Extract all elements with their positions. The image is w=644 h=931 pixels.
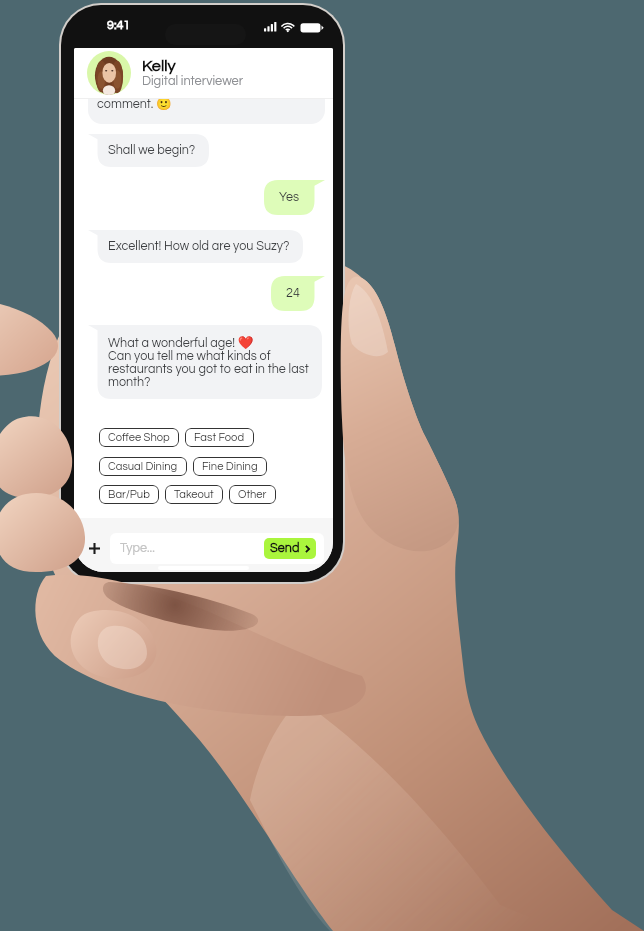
staticText: Excellent! How old are you Suzy? <box>108 240 290 253</box>
staticText: Takeout <box>174 489 214 501</box>
button[interactable]: Other <box>229 485 276 504</box>
staticText: Fast Food <box>194 432 245 444</box>
button[interactable]: Fast Food <box>185 428 254 447</box>
button[interactable]: Coffee Shop <box>99 428 179 447</box>
staticText: Digital interviewer <box>142 75 244 88</box>
staticText: Other <box>238 489 267 501</box>
staticText: Send <box>270 542 300 555</box>
button[interactable]: comment. 🙂 <box>88 86 325 124</box>
button[interactable]: Takeout <box>165 485 223 504</box>
staticText: comment. 🙂 <box>97 96 172 111</box>
staticText: Coffee Shop <box>108 432 170 444</box>
button[interactable]: Excellent! How old are you Suzy? <box>88 230 303 263</box>
staticText: Bar/Pub <box>108 489 150 501</box>
staticText: 9:41 <box>107 19 131 32</box>
button[interactable]: Send <box>264 538 316 559</box>
staticText: Type... <box>120 542 155 555</box>
staticText: Fine Dining <box>202 461 258 473</box>
staticText: Kelly <box>142 58 176 75</box>
button[interactable]: 24 <box>271 276 325 311</box>
staticText: Yes <box>279 191 300 204</box>
staticText: Shall we begin? <box>108 144 196 157</box>
button[interactable]: Yes <box>264 180 325 215</box>
button[interactable]: Kelly <box>74 48 333 98</box>
button[interactable]: Casual Dining <box>99 457 187 476</box>
staticText: Casual Dining <box>108 461 178 473</box>
button[interactable]: Fine Dining <box>193 457 267 476</box>
button[interactable]: Shall we begin? <box>88 134 209 167</box>
staticText: restaurants you got to eat in the last <box>108 363 309 376</box>
button[interactable]: Type... <box>110 533 324 564</box>
staticText: Can you tell me what kinds of <box>108 350 271 363</box>
button[interactable]: Bar/Pub <box>99 485 159 504</box>
staticText: 24 <box>286 287 300 300</box>
staticText: What a wonderful age! ❤️ <box>108 335 254 350</box>
staticText: month? <box>108 376 151 389</box>
button[interactable]: What a wonderful age! ❤️ <box>88 325 322 399</box>
button[interactable]: Add attachment <box>83 537 106 560</box>
